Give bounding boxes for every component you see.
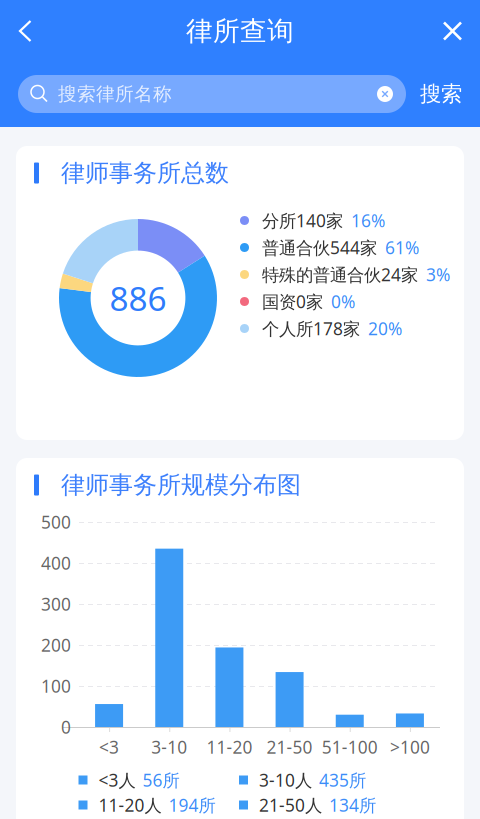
staticText: 500 bbox=[41, 510, 71, 533]
staticText: 194所 bbox=[168, 793, 215, 816]
staticText: 886 bbox=[109, 276, 166, 320]
staticText: 56所 bbox=[142, 768, 179, 791]
staticText: 0 bbox=[61, 715, 71, 738]
button[interactable]: 搜索 bbox=[406, 75, 466, 113]
staticText: 21-50 bbox=[267, 735, 313, 758]
staticText: 3-10人 bbox=[259, 768, 312, 791]
staticText: 11-20人 bbox=[98, 793, 161, 816]
staticText: 律所查询 bbox=[186, 15, 294, 47]
staticText: 300 bbox=[41, 592, 71, 615]
staticText: 分所140家 bbox=[262, 209, 343, 232]
staticText: 100 bbox=[41, 674, 71, 697]
staticText: <3人 bbox=[98, 768, 135, 791]
staticText: >100 bbox=[390, 735, 430, 758]
staticText: 律师事务所总数 bbox=[61, 158, 229, 188]
staticText: 搜索 bbox=[420, 81, 462, 107]
staticText: 搜索律所名称 bbox=[58, 82, 172, 105]
staticText: 61% bbox=[385, 236, 419, 259]
staticText: 20% bbox=[368, 317, 402, 340]
staticText: 普通合伙544家 bbox=[262, 236, 377, 259]
staticText: 21-50人 bbox=[259, 793, 322, 816]
staticText: 特殊的普通合伙24家 bbox=[262, 263, 418, 286]
staticText: 0% bbox=[331, 290, 355, 313]
staticText: 16% bbox=[351, 209, 385, 232]
staticText: 435所 bbox=[319, 768, 366, 791]
staticText: 律师事务所规模分布图 bbox=[61, 470, 301, 500]
staticText: 51-100 bbox=[322, 735, 378, 758]
staticText: 国资0家 bbox=[262, 290, 323, 313]
staticText: 个人所178家 bbox=[262, 317, 360, 340]
button[interactable]: Clear search bbox=[377, 86, 393, 102]
staticText: 400 bbox=[41, 551, 71, 574]
staticText: 200 bbox=[41, 633, 71, 656]
staticText: 3% bbox=[426, 263, 450, 286]
staticText: 134所 bbox=[329, 793, 376, 816]
button[interactable]: Close bbox=[421, 3, 480, 59]
button[interactable]: Back bbox=[0, 3, 59, 59]
staticText: 11-20 bbox=[206, 735, 252, 758]
staticText: 3-10 bbox=[151, 735, 187, 758]
staticText: <3 bbox=[99, 735, 119, 758]
